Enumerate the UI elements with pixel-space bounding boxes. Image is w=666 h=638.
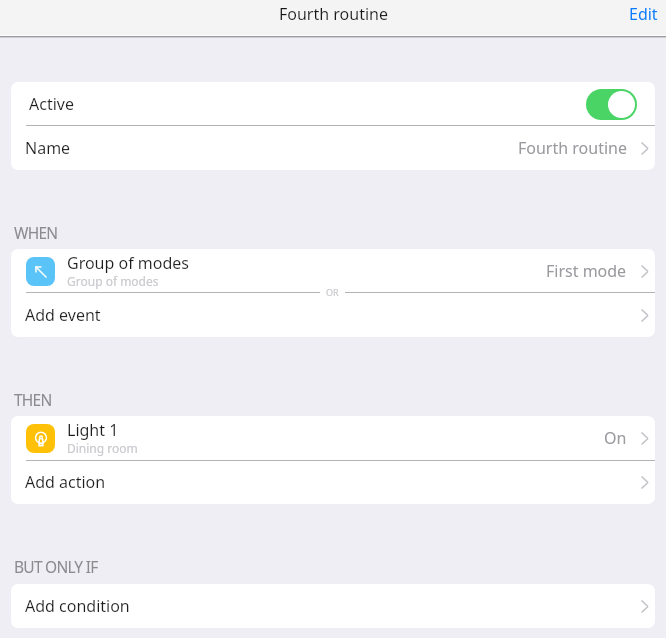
staticText: OR	[326, 286, 339, 298]
button[interactable]: Name	[11, 126, 655, 170]
staticText: Add event	[25, 304, 101, 326]
staticText: Group of modes	[67, 273, 159, 289]
staticText: Add condition	[25, 595, 130, 617]
staticText: Fourth routine	[518, 137, 627, 159]
staticText: Group of modes	[67, 252, 190, 274]
staticText: THEN	[14, 389, 52, 410]
staticText: Add action	[25, 471, 106, 493]
staticText: Name	[25, 137, 71, 159]
staticText: Dining room	[67, 440, 138, 456]
button[interactable]: Group of modes	[11, 249, 655, 293]
button[interactable]: Add event	[11, 293, 655, 337]
staticText: First mode	[546, 260, 627, 282]
staticText: WHEN	[14, 222, 58, 243]
staticText: Fourth routine	[279, 3, 388, 25]
button[interactable]: Active	[586, 89, 637, 120]
button[interactable]: Edit	[617, 0, 666, 30]
staticText: On	[604, 427, 627, 449]
staticText: BUT ONLY IF	[14, 556, 98, 577]
staticText: Edit	[629, 3, 658, 25]
button[interactable]: Add condition	[11, 584, 655, 628]
button[interactable]: Light 1	[11, 416, 655, 460]
staticText: Light 1	[67, 419, 119, 441]
staticText: Active	[29, 93, 74, 115]
button[interactable]: Active	[11, 82, 655, 126]
button[interactable]: Add action	[11, 460, 655, 504]
